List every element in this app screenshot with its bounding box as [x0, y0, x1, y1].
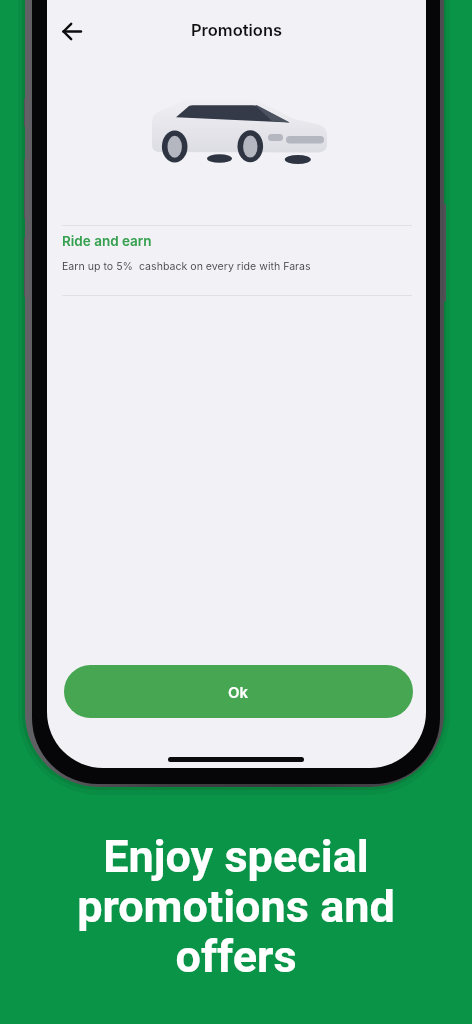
staticText: Earn up to 5% cashback on every ride wit… [62, 260, 311, 273]
staticText: Ok [228, 683, 249, 701]
staticText: Promotions [47, 20, 426, 40]
staticText: Ride and earn [62, 233, 152, 249]
staticText: Enjoy special promotions and offers [0, 830, 472, 983]
